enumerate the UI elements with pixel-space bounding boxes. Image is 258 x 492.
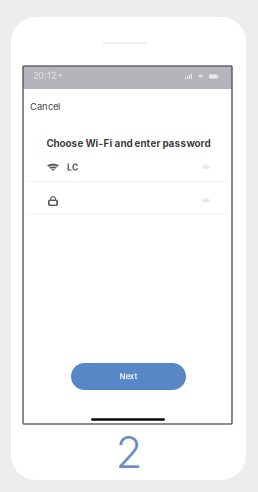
staticText: Next: [119, 372, 137, 381]
staticText: Choose Wi-Fi and enter password: [46, 137, 210, 149]
staticText: LC: [67, 162, 78, 173]
staticText: 2: [115, 425, 142, 479]
button[interactable]: Cancel: [22, 97, 76, 115]
button[interactable]: [23, 185, 232, 215]
button[interactable]: LC: [23, 152, 232, 182]
staticText: Cancel: [30, 101, 60, 112]
button[interactable]: Next: [71, 363, 186, 390]
staticText: 20:12: [33, 70, 56, 81]
